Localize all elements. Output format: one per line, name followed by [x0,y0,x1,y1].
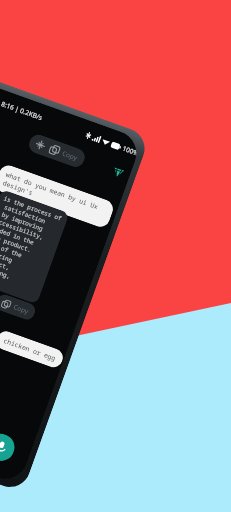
other: Enhance [35,139,46,151]
staticText: Copy [12,302,30,316]
staticText: chicken or egg [2,336,57,363]
staticText: Copy [61,149,79,162]
staticText: is the process of satisfaction by improv… [0,194,64,298]
other: Copy [49,144,60,156]
staticText: 8:16 | 0.2KB/s [0,99,44,122]
other: Copy [1,299,11,309]
staticText: what do you mean by ui Ux design's [2,170,100,220]
staticText: 100% [121,144,139,158]
button[interactable]: Gem [111,164,126,179]
button[interactable]: Enhance [26,132,87,170]
button[interactable]: Copy [0,292,37,322]
button[interactable]: Voice input [0,430,18,465]
